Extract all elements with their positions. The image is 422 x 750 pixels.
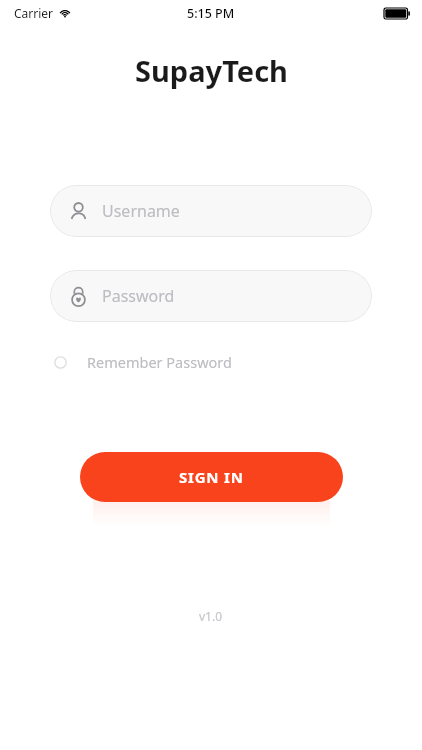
staticText: v1.0 xyxy=(199,608,223,624)
staticText: Carrier xyxy=(14,5,54,21)
button[interactable]: SIGN IN xyxy=(80,452,343,502)
button[interactable]: Username xyxy=(50,185,372,237)
staticText: SupayTech xyxy=(135,51,288,90)
button[interactable]: Remember Password xyxy=(50,346,236,378)
staticText: Password xyxy=(102,285,175,307)
button[interactable]: Password xyxy=(50,270,372,322)
staticText: 5:15 PM xyxy=(187,5,235,22)
staticText: Remember Password xyxy=(87,352,232,372)
staticText: Username xyxy=(102,200,180,222)
staticText: SIGN IN xyxy=(179,467,244,487)
